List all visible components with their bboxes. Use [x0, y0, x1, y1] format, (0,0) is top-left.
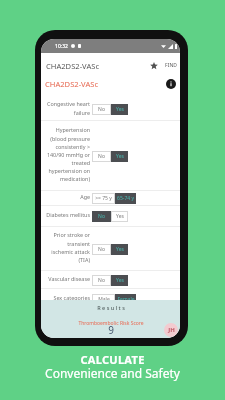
- staticText: No: [98, 277, 105, 284]
- staticText: R e s u l t s: [97, 304, 125, 311]
- staticText: Vascular disease: [48, 275, 90, 282]
- button[interactable]: Yes: [111, 211, 128, 222]
- staticText: Congestive heart failure: [46, 100, 90, 116]
- staticText: 65-74 y: [117, 195, 134, 202]
- button[interactable]: Yes: [111, 244, 128, 255]
- staticText: Yes: [116, 277, 124, 284]
- button[interactable]: Female: [115, 294, 136, 305]
- staticText: 10:32: [55, 43, 68, 50]
- staticText: >= 75 y: [95, 195, 112, 202]
- button[interactable]: No: [92, 104, 111, 115]
- staticText: CHA2DS2-VASc: [45, 79, 99, 89]
- staticText: Yes: [116, 213, 124, 220]
- button[interactable]: No: [92, 244, 111, 255]
- staticText: Male: [98, 296, 110, 303]
- staticText: JH: [168, 326, 175, 334]
- button[interactable]: Yes: [111, 151, 128, 162]
- staticText: Diabetes mellitus: [46, 211, 90, 218]
- staticText: No: [98, 213, 105, 220]
- button[interactable]: Yes: [111, 104, 128, 115]
- staticText: FIND: [165, 62, 177, 69]
- staticText: 9: [108, 323, 114, 334]
- button[interactable]: Yes: [111, 275, 128, 286]
- staticText: Sex categories: [53, 294, 90, 301]
- staticText: Yes: [116, 246, 124, 253]
- staticText: No: [98, 106, 105, 113]
- staticText: Convenience and Safety: [45, 365, 180, 381]
- button[interactable]: Male: [92, 294, 115, 305]
- button[interactable]: Info: [166, 79, 176, 89]
- staticText: Female: [117, 296, 135, 303]
- button[interactable]: Favorite: [148, 60, 160, 72]
- button[interactable]: FIND: [163, 59, 179, 72]
- button[interactable]: No: [92, 151, 111, 162]
- staticText: Yes: [116, 153, 124, 160]
- button[interactable]: No: [92, 211, 111, 222]
- staticText: CALCULATE: [80, 352, 145, 367]
- button[interactable]: 65-74 y: [115, 193, 136, 204]
- button[interactable]: App logo: [164, 323, 178, 337]
- staticText: Hypertension (blood pressure consistentl…: [46, 126, 90, 182]
- staticText: Age: [80, 193, 90, 200]
- button[interactable]: >= 75 y: [92, 193, 115, 204]
- staticText: No: [98, 153, 105, 160]
- button[interactable]: No: [92, 275, 111, 286]
- staticText: Yes: [116, 106, 124, 113]
- staticText: No: [98, 246, 105, 253]
- staticText: CHA2DS2-VASc: [46, 61, 100, 71]
- staticText: Prior stroke or transient ischemic attac…: [51, 231, 90, 263]
- staticText: Thromboembolic Risk Score: [78, 320, 144, 327]
